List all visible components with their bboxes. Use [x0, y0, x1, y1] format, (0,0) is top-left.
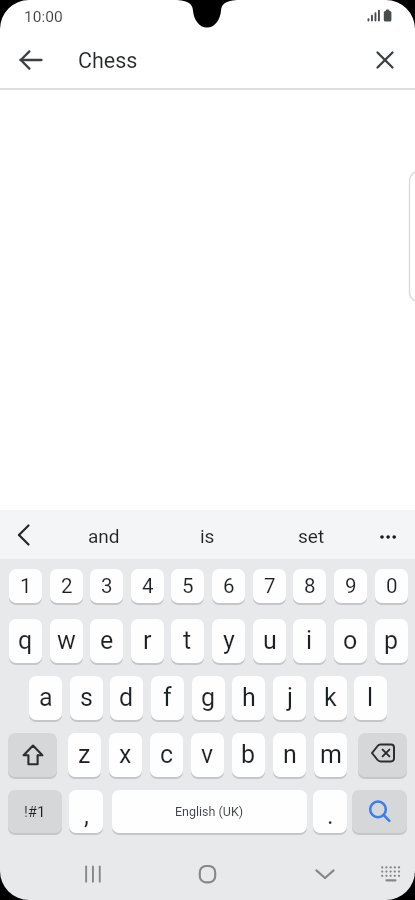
button[interactable]: u	[253, 619, 286, 663]
button[interactable]: d	[110, 676, 143, 720]
button[interactable]	[8, 733, 57, 777]
button[interactable]	[68, 850, 118, 898]
staticText: !#1	[24, 803, 46, 821]
button[interactable]	[8, 37, 54, 83]
button[interactable]	[358, 733, 407, 777]
button[interactable]: h	[232, 676, 265, 720]
button[interactable]: and	[55, 510, 152, 559]
button[interactable]: .	[313, 790, 347, 833]
button[interactable]: p	[375, 619, 408, 663]
staticText: l	[367, 683, 374, 712]
staticText: v	[201, 740, 214, 769]
staticText: 8	[304, 574, 316, 598]
button[interactable]	[367, 510, 415, 559]
button[interactable]: 6	[212, 569, 245, 603]
staticText: b	[241, 740, 256, 769]
button[interactable]: 4	[131, 569, 164, 603]
button[interactable]: 0	[375, 569, 408, 603]
staticText: h	[242, 683, 256, 712]
staticText: 1	[20, 574, 32, 598]
staticText: Chess	[78, 48, 138, 73]
staticText: English (UK)	[175, 804, 244, 819]
button[interactable]: b	[232, 733, 265, 777]
staticText: 2	[61, 574, 73, 598]
staticText: j	[287, 683, 293, 712]
button[interactable]	[183, 850, 233, 898]
button[interactable]: m	[314, 733, 347, 777]
button[interactable]: s	[70, 676, 103, 720]
staticText: 4	[142, 574, 154, 598]
staticText: e	[100, 626, 114, 655]
button[interactable]: 8	[293, 569, 326, 603]
staticText: .	[327, 801, 334, 830]
staticText: k	[324, 683, 337, 712]
button[interactable]: l	[354, 676, 387, 720]
staticText: t	[183, 626, 192, 655]
staticText: m	[320, 740, 342, 769]
button[interactable]: t	[171, 619, 204, 663]
button[interactable]: 2	[50, 569, 83, 603]
staticText: a	[39, 683, 53, 712]
button[interactable]	[300, 850, 350, 898]
button[interactable]: o	[334, 619, 367, 663]
button[interactable]: n	[273, 733, 306, 777]
staticText: z	[78, 740, 91, 769]
button[interactable]: i	[293, 619, 326, 663]
staticText: 6	[223, 574, 235, 598]
button[interactable]: j	[273, 676, 306, 720]
staticText: 3	[101, 574, 113, 598]
button[interactable]: x	[109, 733, 142, 777]
staticText: 10:00	[24, 8, 63, 26]
button[interactable]: e	[90, 619, 123, 663]
button[interactable]: 3	[90, 569, 123, 603]
button[interactable]: 1	[9, 569, 42, 603]
button[interactable]: !#1	[8, 790, 62, 833]
button[interactable]	[362, 37, 408, 83]
button[interactable]: set	[263, 510, 360, 559]
staticText: ,	[84, 801, 89, 830]
staticText: q	[18, 626, 33, 655]
staticText: d	[119, 683, 134, 712]
button[interactable]: ,	[69, 790, 103, 833]
button[interactable]: q	[9, 619, 42, 663]
staticText: o	[343, 626, 358, 655]
staticText: u	[263, 626, 277, 655]
staticText: 7	[264, 574, 276, 598]
button[interactable]: a	[29, 676, 62, 720]
staticText: is	[200, 525, 215, 547]
button[interactable]: z	[68, 733, 101, 777]
button[interactable]	[366, 850, 415, 898]
button[interactable]: 7	[253, 569, 286, 603]
button[interactable]: v	[191, 733, 224, 777]
staticText: c	[160, 740, 174, 769]
staticText: 5	[182, 574, 194, 598]
button[interactable]: English (UK)	[112, 790, 307, 833]
button[interactable]: is	[159, 510, 256, 559]
staticText: w	[57, 626, 76, 655]
staticText: r	[143, 626, 152, 655]
staticText: i	[306, 626, 313, 655]
button[interactable]: f	[151, 676, 184, 720]
staticText: p	[384, 626, 399, 655]
staticText: 0	[386, 574, 398, 598]
button[interactable]: g	[192, 676, 225, 720]
staticText: f	[163, 683, 172, 712]
button[interactable]	[0, 510, 48, 559]
button[interactable]: c	[150, 733, 183, 777]
button[interactable]: 5	[171, 569, 204, 603]
staticText: s	[80, 683, 93, 712]
staticText: x	[119, 740, 132, 769]
staticText: 9	[345, 574, 357, 598]
button[interactable]: r	[131, 619, 164, 663]
button[interactable]: y	[212, 619, 245, 663]
staticText: and	[88, 525, 120, 547]
button[interactable]: w	[50, 619, 83, 663]
staticText: y	[223, 626, 235, 655]
staticText: n	[283, 740, 297, 769]
button[interactable]: k	[314, 676, 347, 720]
button[interactable]	[352, 790, 407, 833]
button[interactable]: 9	[334, 569, 367, 603]
staticText: g	[201, 683, 216, 712]
staticText: set	[298, 525, 325, 547]
